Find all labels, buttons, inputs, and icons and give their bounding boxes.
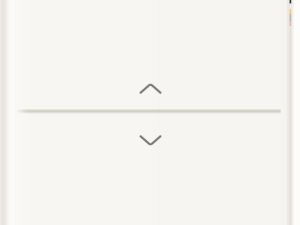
button[interactable]: Decrease — [0, 111, 290, 225]
button[interactable]: Increase — [0, 0, 290, 111]
